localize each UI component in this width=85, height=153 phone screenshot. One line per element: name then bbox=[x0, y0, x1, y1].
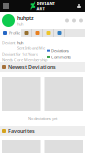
staticText: huh bbox=[17, 21, 23, 27]
staticText: Deviations bbox=[51, 48, 69, 53]
staticText: Deviant bbox=[2, 40, 15, 45]
staticText: Favourites bbox=[8, 127, 35, 135]
staticText: huh bbox=[17, 40, 23, 45]
button[interactable]: Profile bbox=[0, 29, 21, 37]
staticText: Newest Deviations bbox=[8, 63, 56, 71]
staticText: Pageviews bbox=[51, 61, 69, 66]
button[interactable]: Prints bbox=[32, 29, 43, 37]
staticText: DEVIANT bbox=[36, 1, 54, 6]
button[interactable]: Gallery bbox=[21, 29, 32, 37]
staticText: Profile bbox=[9, 30, 20, 36]
staticText: Comments bbox=[51, 54, 71, 60]
button[interactable]: Favourites bbox=[43, 29, 54, 37]
staticText: Sent Info and Me bbox=[17, 45, 45, 51]
button[interactable]: Journal bbox=[54, 29, 65, 37]
button[interactable]: Account bbox=[73, 0, 85, 12]
button[interactable]: Menu bbox=[0, 0, 12, 12]
staticText: Needs Core Membership bbox=[2, 57, 47, 62]
staticText: ART bbox=[36, 6, 44, 11]
staticText: No deviations yet bbox=[28, 116, 57, 121]
staticText: huhptz bbox=[17, 14, 34, 21]
staticText: Deviant for 1st Years bbox=[2, 52, 38, 57]
